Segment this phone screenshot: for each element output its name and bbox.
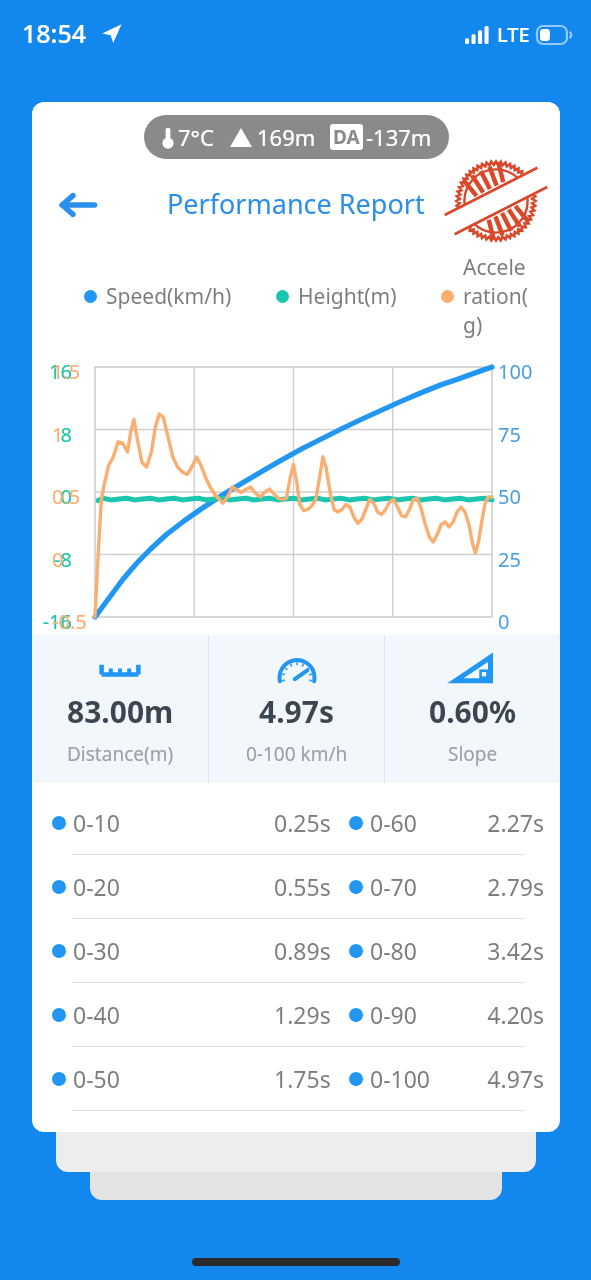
staticText: DA — [333, 124, 360, 150]
staticText: 0 — [38, 483, 72, 510]
staticText: 0-70 — [370, 871, 417, 902]
staticText: 0 — [498, 608, 510, 635]
staticText: 0.5 — [52, 483, 92, 510]
staticText: 2.27s — [458, 807, 544, 838]
staticText: 7°C — [178, 122, 214, 152]
staticText: -16 — [38, 608, 72, 635]
staticText: 0-20 — [73, 871, 120, 902]
staticText: 25 — [498, 546, 521, 573]
staticText: -8 — [38, 546, 72, 573]
staticText: 83.00m — [67, 691, 174, 732]
staticText: 16 — [38, 358, 72, 385]
staticText: 4.97s — [259, 691, 334, 732]
staticText: 0.55s — [274, 871, 331, 902]
staticText: 0-90 — [370, 999, 417, 1030]
staticText: 0-30 — [73, 935, 120, 966]
staticText: 0.60% — [429, 691, 516, 732]
staticText: -0.5 — [52, 608, 92, 635]
button[interactable]: Back — [50, 177, 106, 233]
staticText: 0-40 — [73, 999, 120, 1030]
button[interactable]: 7°C — [144, 115, 449, 159]
button[interactable]: 0-40 — [32, 983, 560, 1046]
staticText: 2.79s — [458, 871, 544, 902]
button[interactable]: 0-20 — [32, 855, 560, 918]
staticText: 0.25s — [274, 807, 331, 838]
button[interactable]: 83.00m — [32, 635, 208, 783]
staticText: 0-100 — [370, 1063, 431, 1094]
staticText: 4.97s — [458, 1063, 544, 1094]
staticText: 50 — [498, 483, 521, 510]
staticText: 1.5 — [52, 358, 92, 385]
staticText: 0-50 — [73, 1063, 120, 1094]
staticText: 100 — [498, 358, 533, 385]
staticText: 8 — [38, 421, 72, 448]
staticText: 3.42s — [458, 935, 544, 966]
staticText: Performance Report — [167, 185, 425, 222]
staticText: 4.20s — [458, 999, 544, 1030]
staticText: 75 — [498, 421, 521, 448]
button[interactable]: 0-30 — [32, 919, 560, 982]
staticText: LTE — [497, 21, 530, 48]
staticText: Distance(m) — [67, 741, 174, 767]
button[interactable]: 0-10 — [32, 791, 560, 854]
staticText: Speed(km/h) — [106, 282, 232, 311]
staticText: 1.75s — [274, 1063, 331, 1094]
button[interactable]: 4.97s — [209, 635, 384, 783]
staticText: 0 — [52, 546, 92, 573]
button[interactable]: 0-50 — [32, 1047, 560, 1110]
staticText: 0-80 — [370, 935, 417, 966]
staticText: 1.29s — [274, 999, 331, 1030]
staticText: Acceleration(g) — [463, 253, 530, 340]
staticText: 0-10 — [73, 807, 120, 838]
staticText: -137m — [366, 122, 432, 152]
staticText: 169m — [257, 122, 316, 152]
staticText: 1 — [52, 421, 92, 448]
staticText: Slope — [448, 741, 498, 767]
button[interactable]: 0.60% — [385, 635, 560, 783]
staticText: 18:54 — [22, 16, 87, 50]
staticText: 0.89s — [274, 935, 331, 966]
staticText: 0-100 km/h — [246, 741, 348, 767]
staticText: 0-60 — [370, 807, 417, 838]
staticText: Height(m) — [298, 282, 397, 311]
